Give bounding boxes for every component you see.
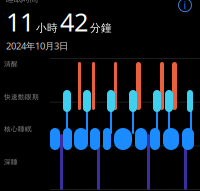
staticText: 2024年10月3日 [6, 40, 68, 52]
staticText: 小時 [36, 21, 58, 35]
button[interactable]: 關於睡眠時間 [174, 0, 196, 16]
staticText: 分鐘 [90, 21, 112, 35]
staticText: 清醒 [4, 60, 18, 68]
staticText: 11 [6, 5, 34, 39]
staticText: 核心睡眠 [4, 125, 32, 133]
staticText: i [183, 0, 186, 12]
staticText: 深睡 [4, 158, 18, 166]
staticText: 42 [60, 5, 88, 39]
staticText: 快速動眼期 [4, 93, 39, 101]
staticText: 睡眠時間 [6, 0, 38, 4]
